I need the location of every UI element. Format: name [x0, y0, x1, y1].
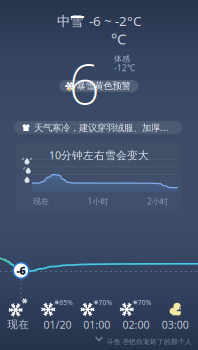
staticText: 暴雪黄色预警 [76, 80, 130, 92]
staticText: 70% [98, 298, 112, 307]
staticText: 中雪 -6 ~ -2°C [57, 12, 141, 30]
staticText: -6 [68, 0, 99, 120]
staticText: 03:00 [162, 317, 189, 332]
staticText: 1小时 [87, 196, 108, 207]
button[interactable]: 03:00 [156, 300, 195, 330]
button[interactable]: 70% [77, 300, 116, 330]
staticText: 01/20 [43, 317, 71, 332]
staticText: 现在 [33, 196, 49, 206]
button[interactable]: 现在 [0, 300, 38, 330]
staticText: °C [111, 29, 126, 48]
button[interactable]: 70% [116, 300, 156, 330]
staticText: 天气寒冷，建议穿羽绒服、加厚毛衣等厚重… [34, 121, 172, 134]
staticText: 斗鱼 @把你宠坏了的那个人 [107, 337, 192, 346]
staticText: 体感 [114, 54, 130, 64]
staticText: 65% [59, 298, 73, 307]
staticText: 02:00 [122, 317, 149, 332]
staticText: 现在 [7, 318, 29, 331]
button[interactable]: 天气寒冷，建议穿羽绒服、加厚毛衣等厚重… [14, 121, 182, 134]
staticText: -6 [16, 263, 25, 278]
staticText: 70% [138, 298, 152, 307]
button[interactable]: 65% [38, 300, 77, 330]
button[interactable]: 暴雪黄色预警 [59, 80, 138, 92]
staticText: -12°C [114, 63, 135, 73]
staticText: 10分钟左右雪会变大 [49, 148, 149, 162]
staticText: 01:00 [83, 317, 110, 332]
staticText: 2小时 [147, 196, 168, 207]
